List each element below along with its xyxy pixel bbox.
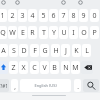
button[interactable]: G	[40, 44, 49, 57]
button[interactable]: 4	[28, 9, 37, 22]
button[interactable]: D	[19, 44, 28, 57]
staticText: H	[53, 46, 59, 56]
button[interactable]: English (US)	[20, 79, 71, 92]
staticText: N	[63, 63, 69, 73]
button[interactable]: Backspace	[81, 61, 93, 74]
button[interactable]: S	[9, 44, 18, 57]
staticText: 9	[81, 11, 86, 21]
staticText: 4	[30, 11, 35, 21]
staticText: K	[74, 46, 79, 56]
button[interactable]: Shift	[0, 61, 8, 74]
staticText: 3	[20, 11, 25, 21]
staticText: A	[1, 46, 6, 56]
button[interactable]: More	[78, 0, 83, 5]
button[interactable]: Search	[83, 79, 99, 92]
staticText: T	[42, 28, 46, 38]
staticText: X	[21, 63, 26, 73]
staticText: ,	[14, 82, 16, 90]
button[interactable]: K	[72, 44, 81, 57]
staticText: U	[61, 28, 67, 38]
button[interactable]: 2	[8, 9, 17, 22]
button[interactable]: ?#1	[0, 79, 9, 92]
staticText: Q	[0, 28, 6, 38]
button[interactable]: H	[51, 44, 60, 57]
staticText: M	[72, 63, 79, 73]
button[interactable]: M	[71, 61, 80, 74]
button[interactable]: 5	[39, 9, 48, 22]
button[interactable]: R	[28, 26, 37, 39]
staticText: ?#1	[0, 83, 8, 89]
staticText: 6	[51, 11, 56, 21]
button[interactable]: Y	[49, 26, 58, 39]
button[interactable]: E	[18, 26, 27, 39]
button[interactable]: X	[19, 61, 28, 74]
staticText: S	[12, 46, 16, 56]
staticText: D	[21, 46, 27, 56]
staticText: Z	[11, 63, 16, 73]
button[interactable]: 1	[0, 9, 7, 22]
button[interactable]: I	[69, 26, 78, 39]
staticText: English (US)	[34, 83, 57, 88]
button[interactable]: 0	[90, 9, 99, 22]
button[interactable]: 9	[79, 9, 88, 22]
staticText: 5	[41, 11, 46, 21]
staticText: F	[33, 46, 37, 56]
button[interactable]: .	[74, 79, 81, 92]
button[interactable]: 7	[59, 9, 68, 22]
button[interactable]: F	[30, 44, 39, 57]
button[interactable]: 8	[69, 9, 78, 22]
button[interactable]: Google	[1, 0, 6, 5]
button[interactable]: U	[59, 26, 68, 39]
button[interactable]: W	[8, 26, 17, 39]
button[interactable]: Emoji	[61, 0, 66, 5]
staticText: 7	[61, 11, 66, 21]
button[interactable]: O	[79, 26, 88, 39]
button[interactable]: V	[40, 61, 49, 74]
button[interactable]: T	[39, 26, 48, 39]
button[interactable]: Z	[9, 61, 18, 74]
staticText: R	[30, 28, 35, 38]
staticText: 1	[0, 11, 5, 21]
button[interactable]: L	[82, 44, 91, 57]
button[interactable]: 6	[49, 9, 58, 22]
staticText: V	[42, 63, 47, 73]
staticText: O	[81, 28, 87, 38]
staticText: 0	[92, 11, 97, 21]
button[interactable]: J	[61, 44, 70, 57]
staticText: E	[21, 28, 25, 38]
staticText: C	[32, 63, 37, 73]
staticText: Y	[52, 28, 56, 38]
staticText: J	[65, 46, 67, 56]
staticText: W	[9, 28, 16, 38]
staticText: 2	[10, 11, 15, 21]
staticText: .	[77, 82, 79, 90]
staticText: P	[92, 28, 97, 38]
button[interactable]: P	[90, 26, 99, 39]
button[interactable]: ,	[11, 79, 18, 92]
button[interactable]: C	[30, 61, 39, 74]
button[interactable]: Settings	[15, 0, 20, 5]
button[interactable]: Q	[0, 26, 7, 39]
staticText: L	[85, 46, 89, 56]
staticText: 8	[71, 11, 76, 21]
staticText: B	[52, 63, 57, 73]
button[interactable]: B	[50, 61, 59, 74]
button[interactable]: A	[0, 44, 8, 57]
staticText: G	[42, 46, 48, 56]
staticText: I	[72, 28, 75, 38]
button[interactable]: 3	[18, 9, 27, 22]
button[interactable]: N	[61, 61, 70, 74]
